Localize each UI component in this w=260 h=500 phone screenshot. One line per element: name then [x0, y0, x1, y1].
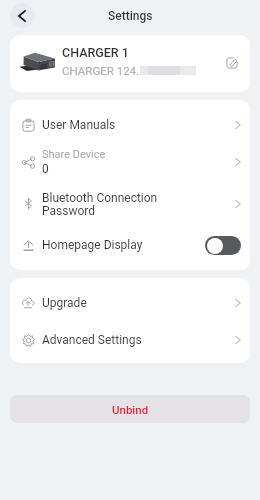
button[interactable]: CHARGER 1 — [10, 35, 250, 92]
button[interactable]: Advanced Settings — [10, 321, 250, 358]
staticText: Advanced Settings — [42, 333, 142, 347]
staticText: Share Device — [42, 148, 106, 161]
button[interactable]: Unbind — [10, 395, 250, 423]
button[interactable]: Back — [10, 3, 35, 28]
button[interactable]: User Manuals — [10, 106, 250, 143]
button[interactable]: Edit device name — [221, 52, 243, 74]
staticText: Unbind — [112, 403, 149, 416]
staticText: Settings — [108, 9, 153, 23]
staticText: User Manuals — [42, 118, 116, 132]
staticText: CHARGER 124. — [62, 64, 140, 77]
button[interactable]: Upgrade — [10, 284, 250, 321]
staticText: Homepage Display — [42, 238, 143, 252]
staticText: Bluetooth Connection Password — [42, 191, 158, 218]
staticText: CHARGER 1 — [62, 45, 129, 60]
staticText: 0 — [42, 162, 49, 176]
button[interactable]: Share Device — [10, 143, 250, 180]
button[interactable]: Bluetooth Connection Password — [10, 180, 250, 222]
staticText: Upgrade — [42, 296, 87, 310]
button[interactable]: Homepage Display — [10, 222, 250, 263]
button[interactable]: Homepage Display toggle — [205, 236, 241, 255]
